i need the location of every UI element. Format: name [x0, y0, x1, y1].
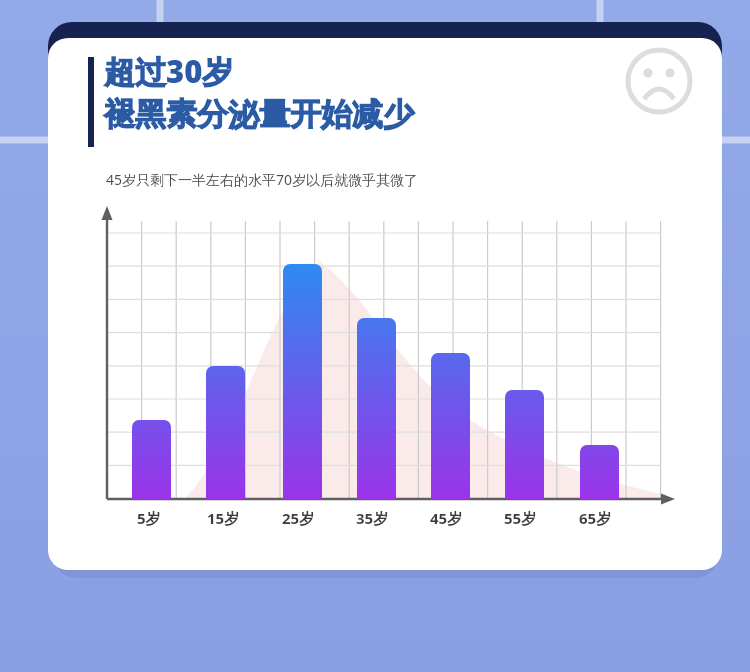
button[interactable]: Sad face — [628, 50, 690, 112]
staticText: 25岁 — [282, 508, 315, 528]
staticText: 15岁 — [207, 508, 240, 528]
staticText: 超过30岁 褪黑素分泌量开始减少 — [104, 50, 414, 135]
staticText: 45岁 — [430, 508, 463, 528]
staticText: 65岁 — [579, 508, 612, 528]
staticText: 5岁 — [137, 508, 161, 528]
staticText: 45岁只剩下一半左右的水平70岁以后就微乎其微了 — [106, 170, 419, 189]
staticText: 55岁 — [504, 508, 537, 528]
staticText: 35岁 — [356, 508, 389, 528]
